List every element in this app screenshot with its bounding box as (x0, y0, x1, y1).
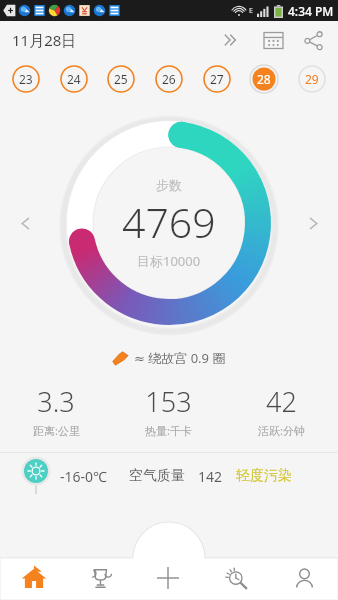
staticText: 142 (198, 467, 223, 486)
button[interactable]: Previous day (10, 208, 40, 238)
staticText: 153 (145, 383, 192, 420)
button[interactable]: Home (0, 556, 67, 600)
button[interactable]: 3.3 (0, 383, 112, 438)
button[interactable]: 25 (101, 59, 141, 99)
staticText: 23 (19, 71, 33, 87)
staticText: 活跃:分钟 (258, 423, 305, 438)
button[interactable]: 24 (54, 59, 94, 99)
button[interactable]: Alarm (202, 556, 270, 600)
staticText: 25 (114, 71, 128, 87)
staticText: 轻度污染 (236, 467, 292, 485)
button[interactable]: 28 (244, 59, 284, 99)
button[interactable]: 153 (112, 383, 225, 438)
staticText: 4769 (122, 194, 216, 250)
staticText: -16-0℃ (60, 467, 107, 486)
staticText: 28 (257, 71, 271, 87)
staticText: 空气质量 (129, 467, 185, 485)
staticText: 目标10000 (137, 252, 201, 270)
button[interactable]: ≈ 绕故宫 0.9 圈 (0, 345, 338, 371)
staticText: 距离:公里 (33, 423, 80, 438)
button[interactable]: Fast forward (214, 23, 248, 57)
staticText: 热量:千卡 (145, 423, 192, 438)
button[interactable]: Next day (298, 208, 328, 238)
staticText: 3.3 (37, 383, 75, 420)
button[interactable]: 27 (197, 59, 237, 99)
staticText: 24 (67, 71, 81, 87)
staticText: 26 (162, 71, 176, 87)
button[interactable]: 26 (149, 59, 189, 99)
button[interactable]: Add (134, 556, 202, 600)
staticText: 42 (266, 383, 297, 420)
button[interactable]: -16-0℃ (0, 453, 338, 499)
staticText: 27 (210, 71, 224, 87)
button[interactable]: Profile (270, 556, 338, 600)
button[interactable]: 42 (225, 383, 338, 438)
staticText: 4:34 PM (288, 3, 334, 19)
button[interactable]: Achievements (67, 556, 134, 600)
button[interactable]: 23 (6, 59, 46, 99)
staticText: ≈ 绕故宫 0.9 圈 (134, 349, 226, 367)
staticText: 步数 (156, 177, 182, 193)
button[interactable]: Calendar (256, 23, 290, 57)
staticText: 11月28日 (12, 30, 77, 50)
staticText: 29 (305, 71, 319, 87)
button[interactable]: Share (296, 23, 330, 57)
staticText: E (249, 6, 253, 16)
button[interactable]: 29 (292, 59, 332, 99)
